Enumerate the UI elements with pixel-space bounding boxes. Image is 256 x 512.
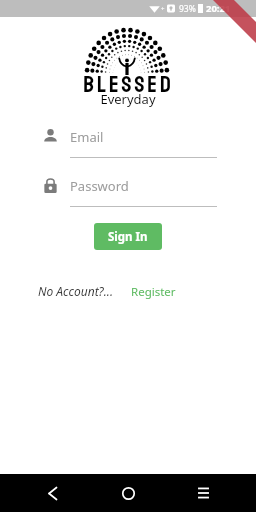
staticText: Sign In — [108, 229, 148, 245]
button[interactable]: Home — [110, 475, 146, 511]
button[interactable]: No Account?... — [38, 283, 113, 299]
staticText: 20:21 — [206, 2, 231, 15]
button[interactable]: Register — [131, 284, 176, 300]
staticText: 93% — [179, 3, 196, 15]
button[interactable]: Recent apps — [185, 475, 221, 511]
staticText: No Account?... — [38, 283, 113, 299]
staticText: + — [161, 5, 165, 13]
staticText: Email — [70, 128, 104, 146]
staticText: Everyday — [100, 90, 156, 108]
staticText: Password — [70, 177, 129, 195]
button[interactable]: Back — [34, 475, 70, 511]
button[interactable]: Sign In — [94, 223, 162, 250]
staticText: Register — [131, 284, 176, 300]
staticText: BLESSED — [83, 64, 174, 106]
